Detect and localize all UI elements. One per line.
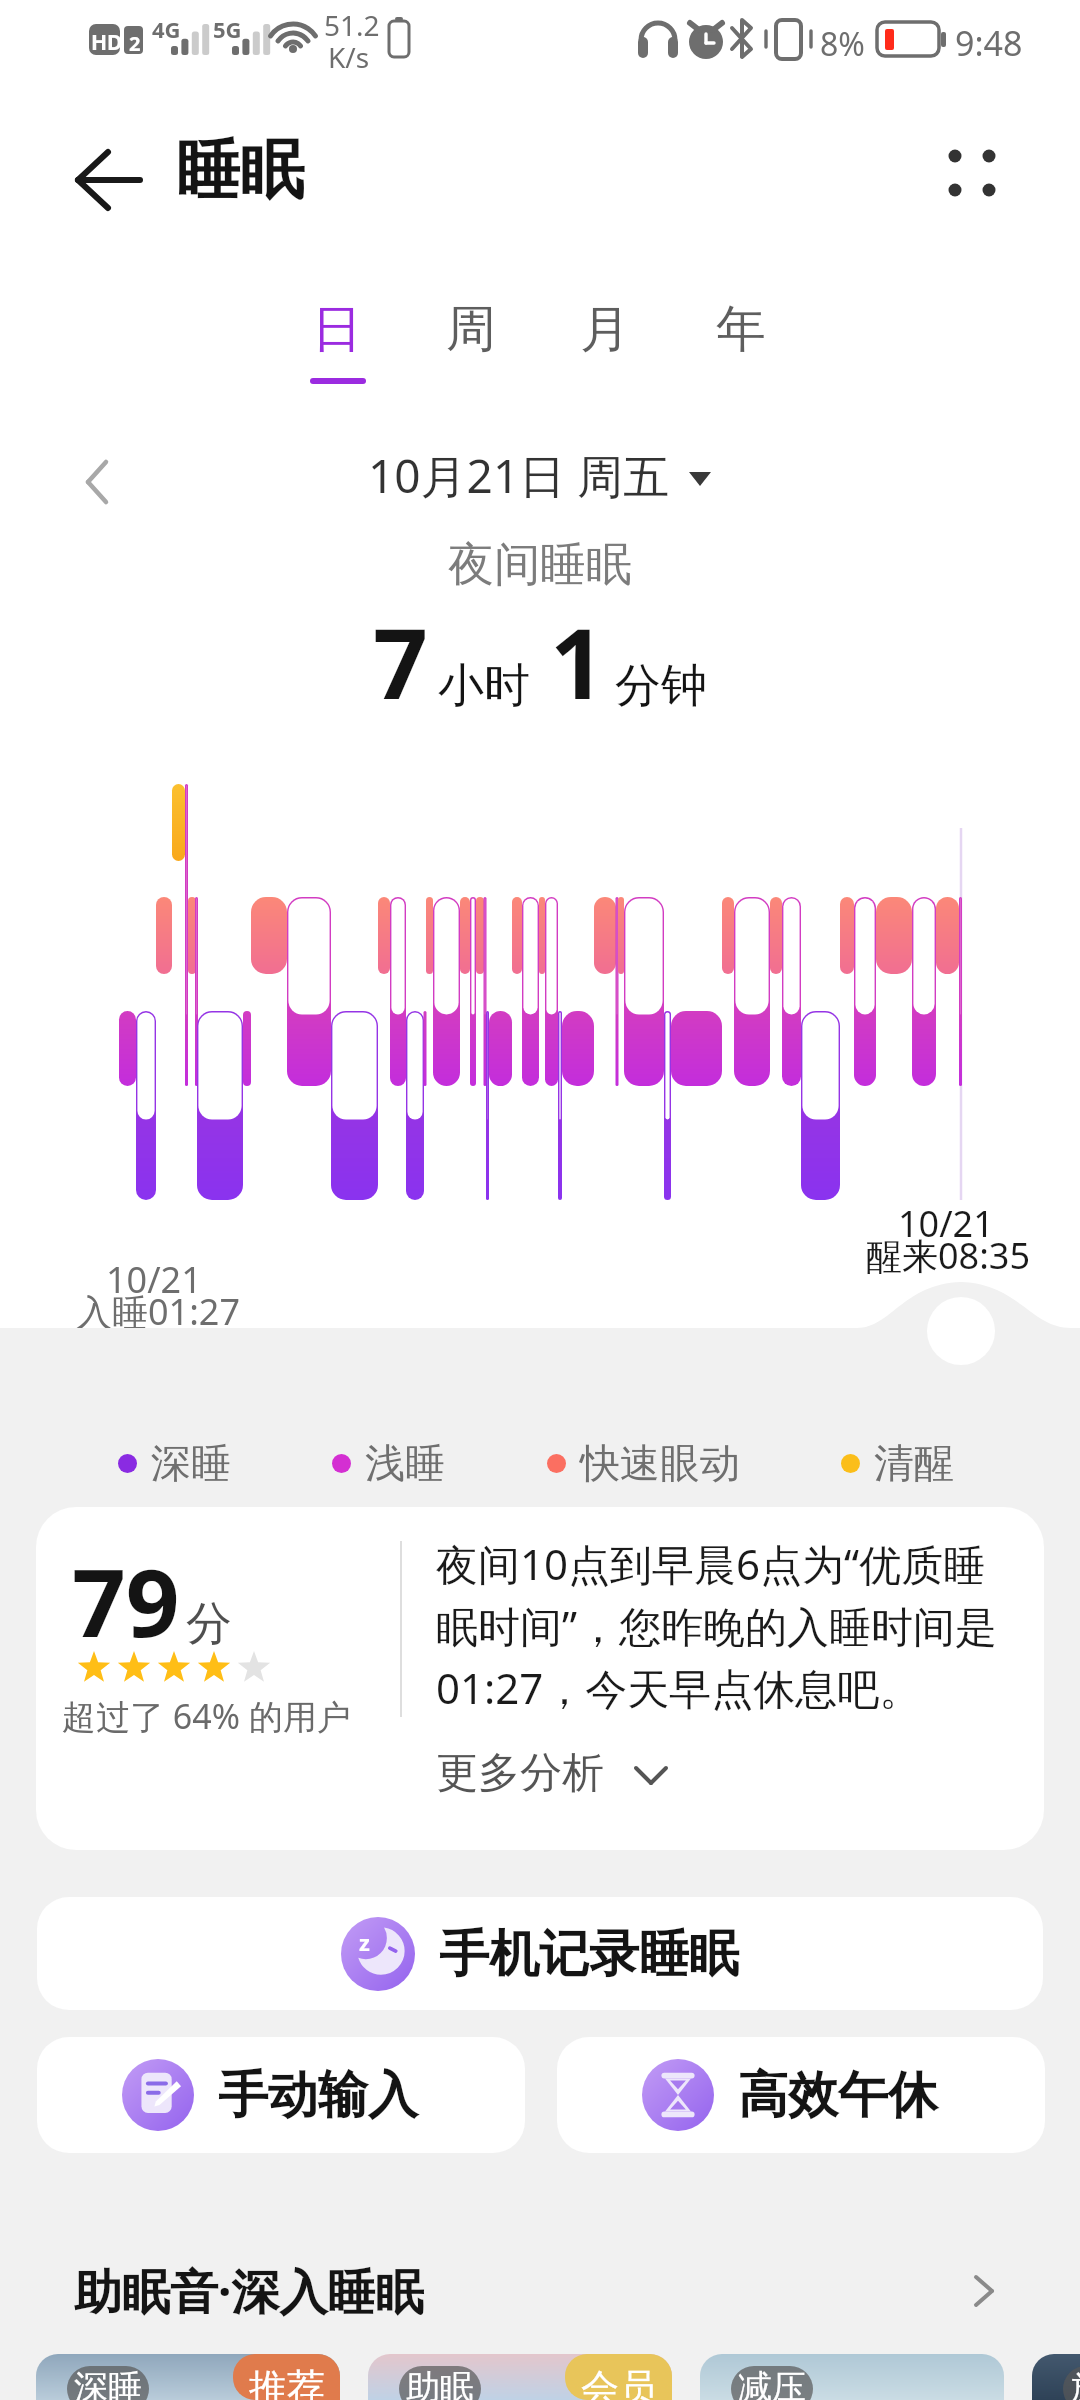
staticText: 助眠	[406, 2366, 474, 2400]
staticText: 手机记录睡眠	[439, 1923, 739, 1986]
button[interactable]: 年	[693, 298, 789, 402]
button[interactable]: 月	[557, 298, 653, 402]
staticText: 日	[312, 298, 362, 361]
staticText: 1	[550, 596, 605, 727]
staticText: 深睡	[151, 1438, 231, 1488]
staticText: 快速眼动	[580, 1438, 740, 1488]
button[interactable]: 更多分析	[436, 1747, 672, 1800]
staticText: 放松	[1070, 2366, 1080, 2400]
button[interactable]: Back	[66, 134, 150, 218]
staticText: 夜间睡眠	[0, 536, 1080, 594]
staticText: 周	[446, 298, 496, 361]
staticText: 5G	[213, 14, 242, 44]
staticText: 更多分析	[436, 1747, 604, 1800]
staticText: 推荐	[249, 2364, 325, 2400]
staticText: 醒来08:35	[866, 1231, 1031, 1280]
staticText: 79	[72, 1537, 180, 1665]
staticText: 深睡	[74, 2366, 142, 2400]
button[interactable]: 高效午休	[557, 2037, 1045, 2153]
button[interactable]: 手动输入	[37, 2037, 525, 2153]
staticText: 51.2	[324, 6, 380, 44]
staticText: 10/21	[106, 1255, 202, 1304]
button[interactable]: z	[37, 1897, 1043, 2010]
staticText: 分	[186, 1595, 232, 1653]
button[interactable]: 深睡	[118, 1438, 231, 1488]
button[interactable]: 推荐	[36, 2354, 340, 2400]
button[interactable]: 快速眼动	[547, 1438, 740, 1488]
staticText: 分钟	[615, 657, 707, 715]
staticText: 夜间10点到早晨6点为“优质睡 眠时间”，您昨晚的入睡时间是 01:27，今天早…	[436, 1535, 998, 1717]
staticText: HD	[91, 28, 123, 57]
staticText: 2	[129, 30, 141, 57]
staticText: K/s	[328, 38, 370, 76]
staticText: 月	[580, 298, 630, 361]
button[interactable]: 减压	[700, 2354, 1004, 2400]
staticText: 入睡01:27	[76, 1287, 241, 1336]
staticText: z	[359, 1927, 370, 1957]
staticText: 小时	[438, 657, 530, 715]
staticText: 浅睡	[365, 1438, 445, 1488]
staticText: 超过了 64% 的用户	[62, 1693, 351, 1739]
staticText: 睡眠	[176, 130, 304, 211]
staticText: 会员	[581, 2364, 657, 2400]
button[interactable]: 会员	[368, 2354, 672, 2400]
button[interactable]: 放松	[1032, 2354, 1080, 2400]
staticText: 年	[716, 298, 766, 361]
button[interactable]: 日	[289, 298, 385, 402]
staticText: 9:48	[955, 20, 1023, 66]
button[interactable]: 助眠音·深入睡眠	[74, 2258, 1006, 2324]
staticText: 高效午休	[738, 2064, 938, 2127]
button[interactable]: 周	[423, 298, 519, 402]
staticText: 10/21	[898, 1199, 994, 1248]
button[interactable]: 清醒	[841, 1438, 954, 1488]
staticText: 8%	[820, 22, 865, 66]
staticText: 10月21日 周五	[368, 444, 670, 507]
staticText: 7	[373, 596, 428, 727]
button[interactable]: 浅睡	[332, 1438, 445, 1488]
staticText: 减压	[738, 2366, 806, 2400]
button[interactable]: More options	[920, 126, 1032, 238]
button[interactable]: 79	[36, 1507, 1044, 1850]
staticText: 4G	[152, 14, 181, 44]
button[interactable]: Previous day	[62, 444, 134, 516]
staticText: 手动输入	[218, 2064, 418, 2127]
staticText: 清醒	[874, 1438, 954, 1488]
staticText: 助眠音·深入睡眠	[74, 2258, 424, 2324]
